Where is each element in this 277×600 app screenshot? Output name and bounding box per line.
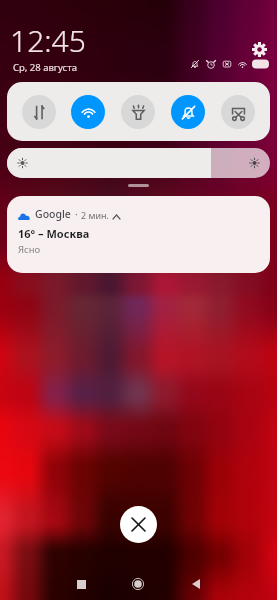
- staticText: 12:45: [10, 20, 86, 61]
- staticText: 16° – Москва: [18, 226, 90, 241]
- staticText: Google: [35, 207, 71, 221]
- button[interactable]: Home: [118, 564, 158, 600]
- button[interactable]: Google: [7, 196, 270, 273]
- button[interactable]: Settings: [250, 40, 269, 59]
- staticText: Ср, 28 августа: [13, 61, 77, 74]
- button[interactable]: Wi-Fi: [71, 95, 105, 129]
- staticText: ·: [75, 207, 78, 221]
- button[interactable]: Mobile data: [22, 95, 56, 129]
- button[interactable]: Brightness: [7, 148, 270, 178]
- button[interactable]: Back: [176, 564, 216, 600]
- staticText: Ясно: [18, 243, 41, 256]
- button[interactable]: Flashlight: [121, 95, 155, 129]
- staticText: 2 мин.: [81, 209, 109, 221]
- button[interactable]: Silent mode: [171, 95, 205, 129]
- button[interactable]: Screenshot: [221, 95, 255, 129]
- button[interactable]: Close: [120, 506, 157, 543]
- button[interactable]: Recents: [61, 564, 101, 600]
